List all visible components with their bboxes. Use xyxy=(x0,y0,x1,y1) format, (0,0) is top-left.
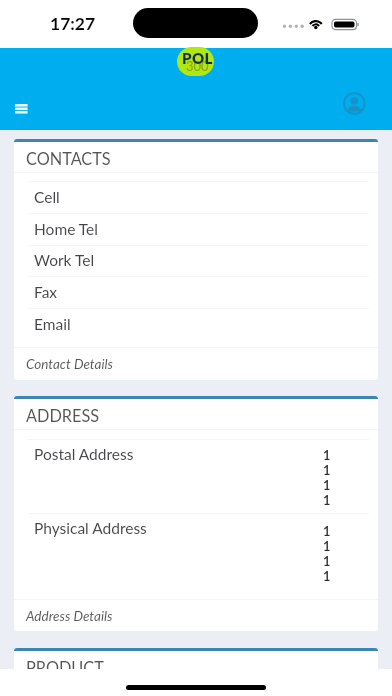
staticText: 1 xyxy=(323,462,331,477)
staticText: 1 xyxy=(323,538,331,553)
button[interactable]: Account xyxy=(333,86,375,122)
button[interactable]: Contact Details xyxy=(14,348,378,380)
button[interactable]: Fax xyxy=(14,276,378,308)
staticText: Cell xyxy=(34,188,60,207)
staticText: 1 xyxy=(323,477,331,492)
staticText: CONTACTS xyxy=(26,149,111,169)
staticText: POL xyxy=(182,49,213,67)
staticText: Fax xyxy=(34,283,58,302)
staticText: PRODUCT xyxy=(26,658,104,678)
staticText: Email xyxy=(34,315,71,334)
button[interactable]: Home Tel xyxy=(14,213,378,245)
button[interactable]: Cell xyxy=(14,181,378,213)
staticText: 17:27 xyxy=(50,13,96,34)
staticText: 300 xyxy=(186,58,209,74)
button[interactable]: Open navigation menu xyxy=(3,86,41,122)
staticText: 1 xyxy=(323,568,331,583)
staticText: ADDRESS xyxy=(26,406,100,426)
staticText: Physical Address xyxy=(34,519,147,538)
button[interactable]: Email xyxy=(14,308,378,340)
staticText: Home Tel xyxy=(34,220,98,239)
staticText: 1 xyxy=(323,492,331,507)
button[interactable]: Physical Address xyxy=(14,513,378,599)
button[interactable]: Work Tel xyxy=(14,245,378,276)
button[interactable]: Address Details xyxy=(14,600,378,631)
staticText: Postal Address xyxy=(34,445,134,464)
staticText: Contact Details xyxy=(26,356,113,372)
staticText: 1 xyxy=(323,523,331,538)
staticText: Address Details xyxy=(26,608,113,624)
button[interactable]: Postal Address xyxy=(14,439,378,513)
staticText: 1 xyxy=(323,447,331,462)
staticText: 1 xyxy=(323,553,331,568)
staticText: Work Tel xyxy=(34,251,95,270)
